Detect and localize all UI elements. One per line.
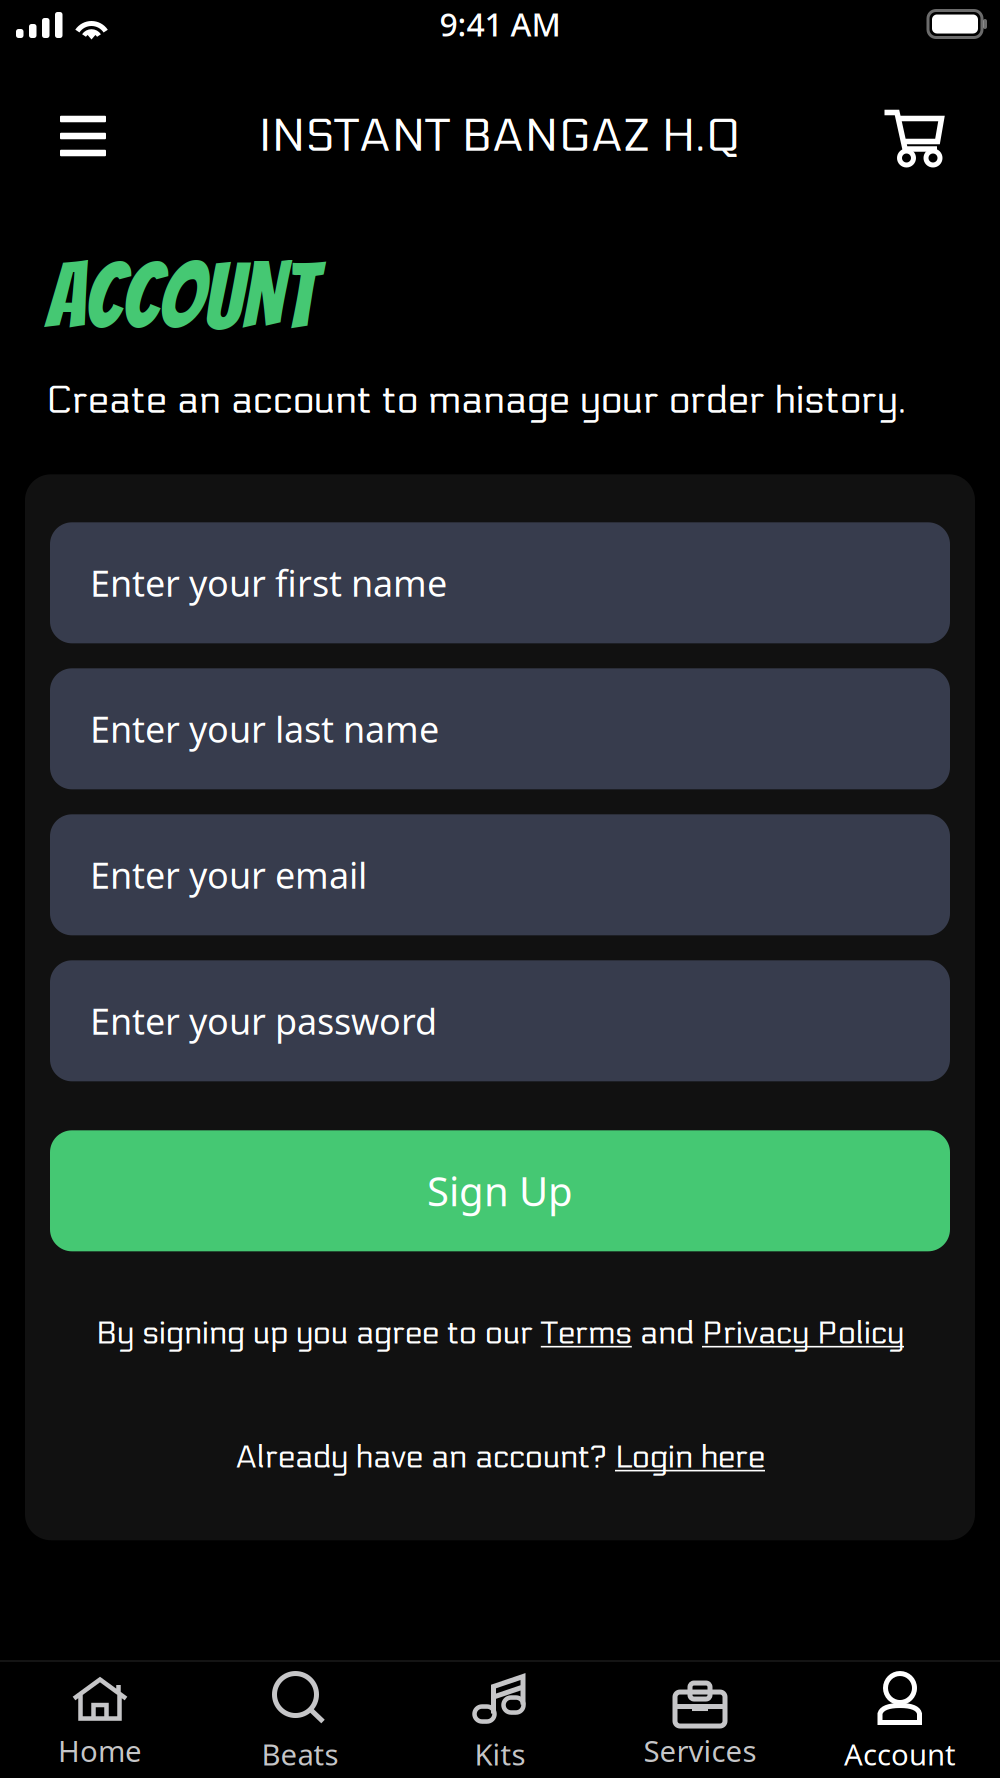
button[interactable]: Sign Up <box>50 1130 950 1251</box>
staticText: INSTANT BANGAZ H.Q <box>258 108 741 164</box>
staticText: Kits <box>474 1734 525 1773</box>
staticText: Home <box>58 1731 142 1770</box>
staticText: Sign Up <box>427 1164 573 1217</box>
button[interactable]: Kits <box>400 1658 600 1778</box>
staticText: By signing up you agree to our Terms and… <box>96 1314 904 1352</box>
button[interactable]: Shopping cart <box>865 88 961 184</box>
button[interactable]: Services <box>600 1662 800 1778</box>
staticText: Already have an account? Login here <box>235 1438 765 1476</box>
staticText: Enter your last name <box>90 705 439 753</box>
staticText: Beats <box>261 1734 338 1773</box>
staticText: Create an account to manage your order h… <box>46 377 906 423</box>
staticText: Enter your password <box>90 997 437 1045</box>
button[interactable]: Account <box>800 1658 1000 1778</box>
button[interactable]: Enter your password <box>50 960 950 1081</box>
staticText: Services <box>643 1731 756 1770</box>
button[interactable]: Beats <box>200 1658 400 1778</box>
staticText: Enter your email <box>90 851 367 899</box>
button[interactable]: Enter your last name <box>50 668 950 789</box>
button[interactable]: Home <box>0 1662 200 1778</box>
staticText: 9:41 AM <box>439 3 560 45</box>
staticText: ACCOUNT <box>46 248 316 344</box>
button[interactable]: Enter your email <box>50 814 950 935</box>
staticText: Enter your first name <box>90 559 447 607</box>
staticText: Account <box>844 1734 956 1773</box>
button[interactable]: Menu <box>35 88 131 184</box>
button[interactable]: Enter your first name <box>50 522 950 643</box>
